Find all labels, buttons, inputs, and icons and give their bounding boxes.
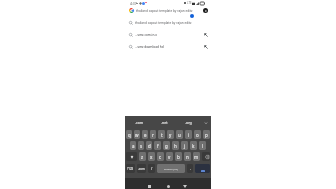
button[interactable]: d [146,141,152,150]
staticText: 4:37 [130,1,137,6]
staticText: n [186,154,189,160]
button[interactable]: w [134,130,140,139]
button[interactable]: b [175,152,182,161]
staticText: p [205,132,208,138]
button[interactable]: f [154,141,161,150]
staticText: .com [138,167,145,171]
button[interactable]: a [130,141,136,150]
staticText: c [159,154,162,160]
button[interactable]: q [126,130,132,139]
staticText: …vmz.com.in.x [135,33,157,37]
button[interactable]: e [142,130,148,139]
button[interactable]: / [148,164,155,173]
staticText: ?123 [127,167,134,171]
button[interactable]: ?123 [126,164,135,173]
staticText: x [150,154,153,160]
staticText: thailand capcut template by rajan editz [135,21,192,25]
staticText: j [184,143,186,149]
button[interactable]: z [139,152,146,161]
button[interactable]: Recents [144,181,154,189]
button[interactable]: thailand capcut template by rajan editz [125,6,211,15]
button[interactable]: Back [180,181,190,189]
button[interactable]: c [157,152,164,161]
staticText: f [157,143,159,149]
staticText: LTE [187,1,192,5]
staticText: i [188,132,190,138]
staticText: b [177,154,180,160]
staticText: v [168,154,171,160]
button[interactable]: p [203,130,210,139]
button[interactable]: k [190,141,197,150]
button[interactable]: thailand capcut template by rajan editz [125,18,211,27]
button[interactable]: .com [127,116,152,129]
button[interactable]: j [181,141,188,150]
button[interactable]: l [199,141,206,150]
staticText: . [190,166,191,171]
button[interactable]: g [163,141,170,150]
button[interactable]: r [150,130,156,139]
button[interactable]: y [167,130,174,139]
button[interactable]: Expand suggestions [200,116,211,129]
staticText: e [144,132,147,138]
button[interactable]: .com [137,164,146,173]
staticText: q [128,132,131,138]
staticText: l [202,143,204,149]
button[interactable]: …vmz download hd [125,42,211,51]
button[interactable]: u [176,130,183,139]
button[interactable]: .net [152,116,176,129]
button[interactable]: …vmz.com.in.x [125,30,211,39]
button[interactable]: h [172,141,179,150]
staticText: .org [185,120,192,125]
staticText: t [161,132,163,138]
button[interactable]: Shift [126,152,137,161]
button[interactable]: n [184,152,191,161]
staticText: z [141,154,144,160]
button[interactable]: Home [163,181,173,189]
button[interactable]: i [185,130,192,139]
staticText: u [178,132,181,138]
staticText: .com [135,120,144,125]
staticText: o [196,132,199,138]
staticText: d [148,143,151,149]
button[interactable]: v [166,152,173,161]
button[interactable]: o [194,130,201,139]
staticText: thailand capcut template by rajan editz [136,9,193,13]
button[interactable]: . [187,164,193,173]
staticText: English (US) [164,167,178,170]
button[interactable]: Search action [203,8,208,13]
staticText: .net [161,120,168,125]
staticText: h [174,143,177,149]
button[interactable]: x [148,152,155,161]
button[interactable]: t [158,130,165,139]
staticText: k [192,143,195,149]
staticText: g [165,143,168,149]
button[interactable]: Search [195,164,210,173]
button[interactable]: Space [157,164,185,173]
staticText: w [135,132,139,138]
button[interactable]: Backspace [202,152,210,161]
staticText: a [132,143,135,149]
staticText: / [151,166,153,171]
staticText: …vmz download hd [135,45,164,49]
staticText: m [194,154,199,160]
staticText: s [140,143,143,149]
staticText: y [169,132,172,138]
button[interactable]: s [138,141,144,150]
button[interactable]: .org [176,116,200,129]
button[interactable]: m [193,152,200,161]
staticText: r [152,132,154,138]
